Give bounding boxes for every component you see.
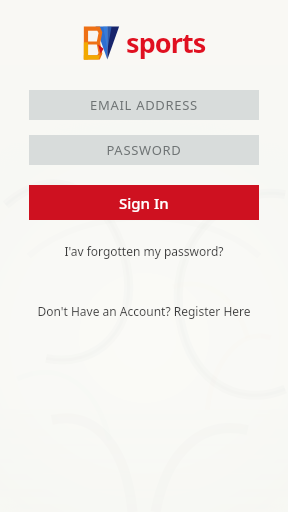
staticText: PASSWORD (106, 141, 182, 159)
staticText: sports (126, 24, 206, 61)
button[interactable]: PASSWORD (29, 135, 259, 165)
button[interactable]: I'av forgotten my password? (29, 239, 259, 263)
staticText: Don't Have an Account? Register Here (37, 303, 251, 319)
button[interactable]: EMAIL ADDRESS (29, 90, 259, 120)
button[interactable]: Don't Have an Account? Register Here (29, 299, 259, 323)
staticText: I'av forgotten my password? (64, 243, 224, 259)
button[interactable]: Sign In (29, 185, 259, 220)
staticText: EMAIL ADDRESS (90, 96, 198, 114)
staticText: Sign In (119, 193, 169, 213)
